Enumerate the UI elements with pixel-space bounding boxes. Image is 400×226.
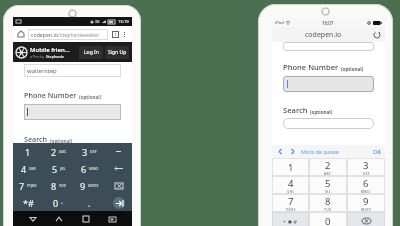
button[interactable]: 2 xyxy=(43,143,74,160)
button[interactable]: 5 xyxy=(43,160,74,177)
button[interactable]: 0 xyxy=(43,194,74,211)
staticText: 3 xyxy=(363,159,369,172)
staticText: 9 xyxy=(80,180,86,192)
staticText: WXYZ xyxy=(361,208,372,212)
button[interactable]: walterstep xyxy=(27,64,121,77)
button[interactable]: 3 xyxy=(74,143,105,160)
button[interactable]: enter xyxy=(105,194,132,211)
staticText: 3G xyxy=(95,19,100,24)
button[interactable]: Mots de passe xyxy=(301,148,339,156)
button[interactable]: 1 xyxy=(13,143,43,160)
button[interactable]: 9 xyxy=(347,194,385,212)
staticText: 0 xyxy=(53,197,59,209)
staticText: Search xyxy=(283,105,308,115)
button[interactable]: 0 xyxy=(309,212,347,226)
button[interactable]: Reload xyxy=(372,30,381,39)
staticText: DEF xyxy=(90,149,97,154)
staticText: . xyxy=(88,197,91,209)
staticText: Phone Number xyxy=(283,62,339,72)
staticText: 5 xyxy=(325,177,331,190)
staticText: 7 xyxy=(288,195,294,208)
staticText: MNO xyxy=(89,166,99,171)
button[interactable]: Tabs xyxy=(110,29,120,39)
staticText: 8 xyxy=(325,195,331,208)
button[interactable]: Log In xyxy=(79,46,103,59)
staticText: iPod xyxy=(275,20,284,26)
staticText: Log In xyxy=(84,49,99,56)
button[interactable]: Keyboard xyxy=(105,212,119,226)
button[interactable]: Delete xyxy=(347,212,385,226)
button[interactable]: 5 xyxy=(309,176,347,194)
button[interactable]: Recents xyxy=(79,212,93,226)
staticText: (optional) xyxy=(341,66,364,72)
staticText: 7 xyxy=(19,180,25,192)
button[interactable]: *# xyxy=(13,194,43,211)
staticText: 1 xyxy=(114,32,117,37)
button[interactable]: Sign Up xyxy=(105,46,129,59)
staticText: + ✱ # xyxy=(283,218,298,225)
button[interactable]: Previous xyxy=(276,147,285,156)
staticText: Stephanie xyxy=(46,54,65,59)
button[interactable]: 4 xyxy=(13,160,43,177)
staticText: ABC xyxy=(324,172,332,176)
button[interactable]: 2 xyxy=(309,158,347,176)
staticText: 4 xyxy=(21,163,27,175)
staticText: JKL xyxy=(325,190,331,194)
staticText: OK xyxy=(373,148,381,156)
button[interactable]: 3 xyxy=(347,158,385,176)
staticText: MNO xyxy=(361,190,371,194)
button[interactable]: More options xyxy=(120,30,129,39)
button[interactable]: codepen.io xyxy=(31,29,105,40)
staticText: WXYZ xyxy=(88,183,99,188)
staticText: 6 xyxy=(363,177,369,190)
button[interactable]: 8 xyxy=(43,177,74,194)
staticText: JKL xyxy=(60,166,66,171)
staticText: GHI xyxy=(29,166,36,171)
button[interactable]: 6 xyxy=(74,160,105,177)
button[interactable]: space xyxy=(105,160,132,177)
staticText: Search xyxy=(24,134,48,144)
staticText: DEF xyxy=(363,172,370,176)
staticText: 4 xyxy=(288,177,294,190)
staticText: 2 xyxy=(51,146,57,158)
staticText: walterstep xyxy=(27,67,57,75)
button[interactable]: Home xyxy=(16,29,26,39)
button[interactable]: 9 xyxy=(74,177,105,194)
staticText: 15:19 xyxy=(118,19,129,25)
staticText: 6 xyxy=(81,163,87,175)
staticText: 5 xyxy=(52,163,58,175)
staticText: (optional) xyxy=(79,94,102,100)
staticText: a Pen by xyxy=(30,54,46,59)
button[interactable]: Symbols xyxy=(272,212,309,226)
staticText: ABC xyxy=(59,149,67,154)
staticText: Mobile frien... xyxy=(30,46,70,54)
button[interactable]: 4 xyxy=(272,176,309,194)
button[interactable]: 7 xyxy=(13,177,43,194)
button[interactable]: del xyxy=(105,177,132,194)
button[interactable]: dash xyxy=(105,143,132,160)
button[interactable]: . xyxy=(74,194,105,211)
staticText: (optional) xyxy=(50,138,73,144)
staticText: Sign Up xyxy=(108,49,127,56)
staticText: (optional) xyxy=(310,109,333,115)
button[interactable]: OK xyxy=(373,148,381,156)
staticText: 3 xyxy=(82,146,88,158)
staticText: TUV xyxy=(324,208,332,212)
button[interactable] xyxy=(283,118,374,129)
button[interactable]: 6 xyxy=(347,176,385,194)
button[interactable]: Home xyxy=(52,212,66,226)
staticText: Mots de passe xyxy=(301,148,339,156)
staticText: 1 xyxy=(288,161,294,174)
staticText: codepen.io xyxy=(305,30,342,40)
button[interactable]: Back xyxy=(26,212,40,226)
button[interactable]: 7 xyxy=(272,194,309,212)
button[interactable]: Next xyxy=(288,147,297,156)
button[interactable] xyxy=(287,76,374,92)
staticText: PQRS xyxy=(27,183,37,188)
button[interactable]: 1 xyxy=(272,158,309,176)
button[interactable]: 8 xyxy=(309,194,347,212)
staticText: *# xyxy=(23,197,34,209)
staticText: GHI xyxy=(287,190,295,194)
staticText: + xyxy=(61,200,64,205)
button[interactable] xyxy=(27,104,121,120)
